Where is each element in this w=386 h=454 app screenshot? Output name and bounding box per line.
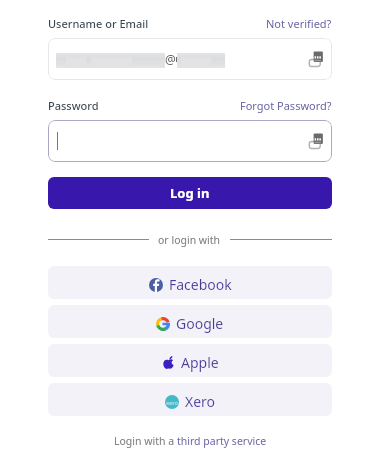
button[interactable]: Forgot Password? xyxy=(240,98,332,113)
button[interactable]: Log in xyxy=(48,177,332,209)
staticText: Google xyxy=(176,314,224,333)
button[interactable]: xero xyxy=(48,383,332,416)
staticText: Forgot Password? xyxy=(240,98,332,113)
button[interactable]: Google xyxy=(48,305,332,338)
staticText: Xero xyxy=(185,392,216,411)
staticText: xero xyxy=(166,399,179,406)
staticText: @ xyxy=(165,51,176,67)
button[interactable]: Not verified? xyxy=(266,16,332,31)
staticText: Apple xyxy=(181,353,219,372)
button[interactable]: Autofill from password manager xyxy=(48,120,332,162)
staticText: third party service xyxy=(177,434,267,448)
other: Autofill from password manager xyxy=(309,133,323,149)
staticText: Username or Email xyxy=(48,16,149,31)
button[interactable]: third party service xyxy=(177,434,267,448)
staticText: Not verified? xyxy=(266,16,332,31)
staticText: Password xyxy=(48,98,99,113)
staticText: Login with a xyxy=(114,434,177,448)
button[interactable]: @ xyxy=(48,38,332,80)
staticText: Log in xyxy=(170,184,210,202)
other: Autofill from password manager xyxy=(309,51,323,67)
staticText: Facebook xyxy=(169,275,232,294)
button[interactable]: Facebook xyxy=(48,266,332,299)
staticText: or login with xyxy=(158,233,221,247)
button[interactable]: Apple xyxy=(48,344,332,377)
